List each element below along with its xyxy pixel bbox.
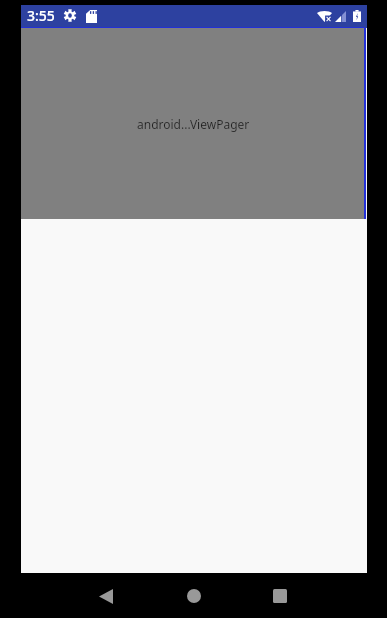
staticText: android...ViewPager xyxy=(137,116,250,132)
button[interactable]: android...ViewPager xyxy=(21,28,366,219)
button[interactable]: Back xyxy=(85,575,127,617)
button[interactable]: Home xyxy=(173,575,215,617)
staticText: 3:55 xyxy=(27,6,55,25)
button[interactable]: Recent apps xyxy=(259,575,301,617)
